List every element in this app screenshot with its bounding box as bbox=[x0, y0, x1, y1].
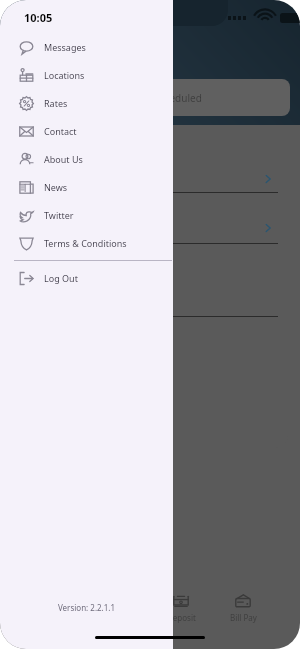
staticText: Deposit bbox=[167, 612, 196, 623]
button[interactable]: Messages bbox=[0, 33, 173, 61]
button[interactable]: Terms & Conditions bbox=[0, 229, 173, 257]
button[interactable]: Open item bbox=[258, 169, 278, 189]
staticText: 10:05 bbox=[24, 10, 53, 25]
button[interactable]: Log Out bbox=[0, 264, 173, 292]
staticText: Contact bbox=[44, 125, 77, 137]
button[interactable]: Deposit bbox=[150, 592, 212, 623]
staticText: Log Out bbox=[44, 272, 78, 284]
staticText: Terms & Conditions bbox=[44, 237, 127, 249]
staticText: About Us bbox=[44, 153, 83, 165]
button[interactable]: News bbox=[0, 173, 173, 201]
button[interactable]: Locations bbox=[0, 61, 173, 89]
button[interactable]: Rates bbox=[0, 89, 173, 117]
button[interactable]: About Us bbox=[0, 145, 173, 173]
staticText: Scheduled bbox=[153, 91, 202, 105]
button[interactable]: Open item bbox=[258, 218, 278, 238]
button[interactable]: Twitter bbox=[0, 201, 173, 229]
button[interactable]: Bill Pay bbox=[212, 592, 274, 623]
staticText: Twitter bbox=[44, 209, 74, 221]
staticText: Locations bbox=[44, 69, 85, 81]
staticText: News bbox=[44, 181, 68, 193]
staticText: Messages bbox=[44, 41, 86, 53]
button[interactable]: Scheduled bbox=[64, 79, 290, 116]
staticText: Version: 2.2.1.1 bbox=[0, 602, 173, 613]
staticText: Rates bbox=[44, 97, 68, 109]
staticText: Bill Pay bbox=[230, 612, 257, 623]
button[interactable]: Contact bbox=[0, 117, 173, 145]
